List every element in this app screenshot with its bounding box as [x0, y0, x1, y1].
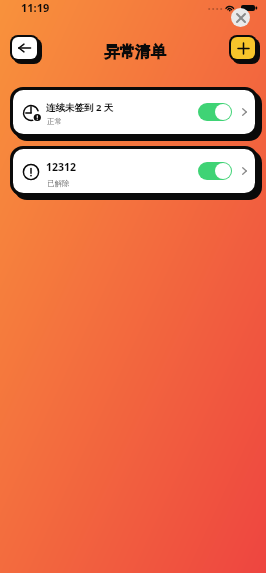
- button[interactable]: 连续未签到 2 天: [13, 90, 255, 134]
- button[interactable]: Close: [231, 8, 250, 27]
- staticText: 异常清单: [104, 42, 166, 62]
- button[interactable]: Toggle: [198, 103, 232, 121]
- staticText: 正常: [47, 117, 62, 126]
- staticText: 12312: [46, 160, 77, 174]
- button[interactable]: Add: [231, 37, 255, 59]
- staticText: 11:19: [21, 0, 50, 15]
- button[interactable]: Back: [12, 37, 37, 59]
- staticText: 已解除: [47, 179, 70, 188]
- button[interactable]: 12312: [13, 149, 255, 193]
- button[interactable]: Toggle: [198, 162, 232, 180]
- staticText: 连续未签到 2 天: [46, 101, 114, 114]
